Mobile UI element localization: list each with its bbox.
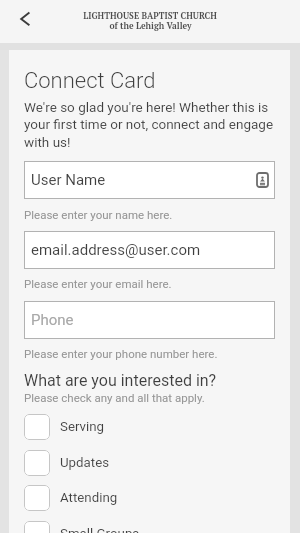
staticText: LIGHTHOUSE BAPTIST CHURCH [83,10,217,21]
button[interactable]: Phone [24,301,275,339]
staticText: email.address@user.com [31,241,268,259]
staticText: We're so glad you're here! Whether this … [24,99,275,150]
staticText: Connect Card [24,68,156,94]
button[interactable]: email.address@user.com [24,231,275,269]
staticText: Phone [31,311,268,329]
button[interactable]: Back [6,4,40,38]
button[interactable]: Serving [24,414,275,440]
staticText: What are you interested in? [24,371,217,390]
staticText: of the Lehigh Valley [109,20,192,31]
button[interactable]: Attending [24,485,275,511]
button[interactable]: Small Groups [24,521,275,533]
staticText: Please enter your name here. [24,208,173,221]
staticText: Updates [60,455,110,471]
button[interactable]: User Name [24,161,275,199]
staticText: Please enter your phone number here. [24,347,218,360]
staticText: User Name [31,171,257,189]
staticText: Small Groups [60,526,140,533]
staticText: Serving [60,419,105,435]
other: Autofill [257,173,268,187]
staticText: Please check any and all that apply. [24,391,205,404]
button[interactable]: Updates [24,450,275,476]
staticText: Attending [60,490,118,506]
staticText: Please enter your email here. [24,277,172,290]
